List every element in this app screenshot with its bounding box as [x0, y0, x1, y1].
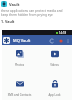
staticText: SMS and Contacts [4, 93, 35, 97]
staticText: keep them hidden from prying eye [1, 13, 53, 17]
staticText: Videos [39, 63, 70, 67]
staticText: App Lock [39, 93, 70, 97]
staticText: 14:18 [59, 31, 67, 35]
button[interactable]: Alerts [58, 38, 63, 43]
button[interactable]: App Lock [39, 80, 70, 97]
staticText: Photos [4, 63, 35, 67]
button[interactable]: More options [65, 38, 70, 43]
staticText: these applications can protect media and [1, 9, 63, 13]
staticText: 1. Vault [1, 19, 15, 24]
button[interactable]: SMS and Contacts [4, 80, 35, 97]
button[interactable]: Videos [39, 50, 70, 67]
button[interactable]: Photos [4, 50, 35, 67]
staticText: MQ Vault [13, 38, 31, 43]
button[interactable]: Vault [1, 1, 20, 7]
other: App icon [3, 37, 10, 44]
button[interactable]: Refresh [49, 38, 54, 43]
staticText: Vault [9, 2, 20, 7]
